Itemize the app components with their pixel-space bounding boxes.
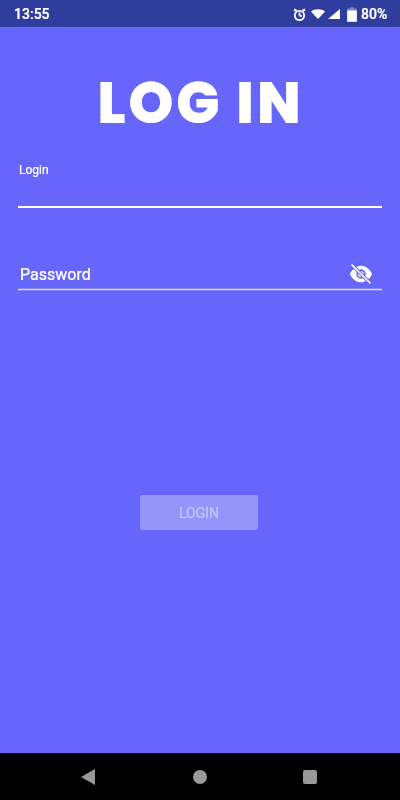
button[interactable]: Home [172, 753, 228, 800]
staticText: LOG IN [97, 63, 304, 143]
button[interactable]: LOGIN [140, 495, 258, 530]
button[interactable]: Recent apps [282, 753, 338, 800]
staticText: 80% [361, 6, 388, 22]
button[interactable]: Password [18, 257, 382, 291]
button[interactable]: Login [18, 158, 382, 208]
staticText: LOGIN [179, 505, 220, 521]
button[interactable]: Show password [344, 257, 378, 291]
staticText: 13:55 [14, 6, 50, 22]
button[interactable]: Back [60, 753, 116, 800]
staticText: Password [20, 265, 91, 284]
staticText: Login [19, 163, 49, 177]
